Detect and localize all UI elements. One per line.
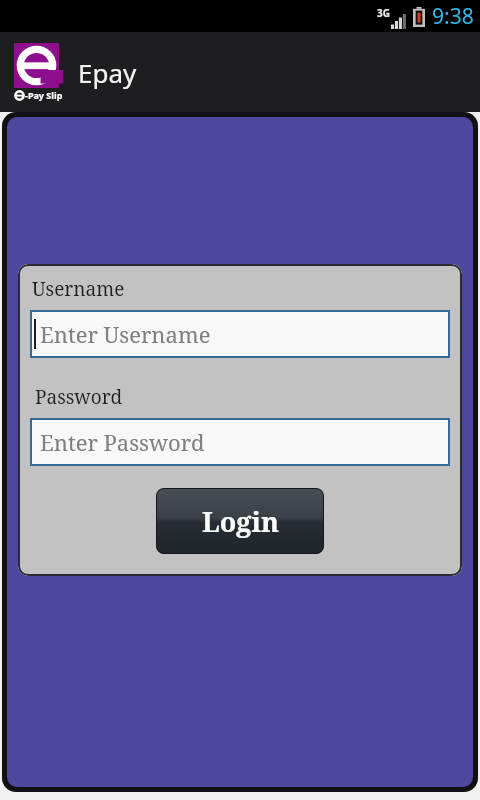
staticText: 3G: [377, 6, 390, 20]
staticText: Epay: [78, 55, 137, 90]
button[interactable]: Enter Password: [30, 418, 450, 466]
button[interactable]: Login: [156, 488, 324, 554]
button[interactable]: Enter Username: [30, 310, 450, 358]
staticText: Enter Username: [40, 319, 211, 349]
staticText: -Pay Slip: [25, 89, 63, 101]
staticText: Username: [32, 276, 125, 302]
staticText: Password: [35, 384, 123, 410]
staticText: Enter Password: [40, 427, 205, 457]
staticText: 9:38: [432, 2, 474, 31]
staticText: Login: [202, 503, 279, 540]
